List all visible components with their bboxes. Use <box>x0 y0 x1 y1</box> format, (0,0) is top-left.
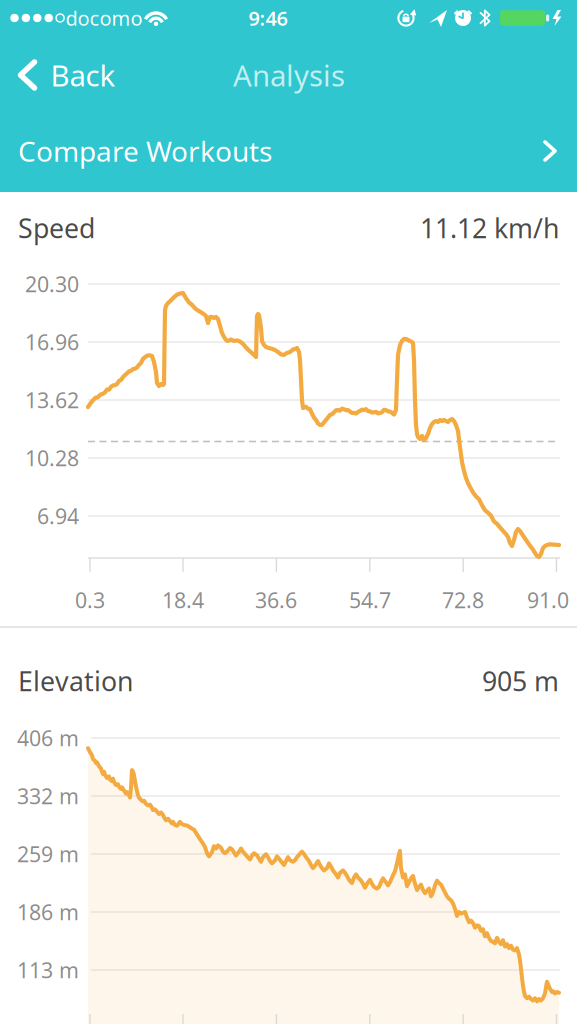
staticText: 18.4 <box>162 586 204 614</box>
staticText: 186 m <box>17 898 79 926</box>
staticText: docomo <box>65 5 142 31</box>
staticText: 11.12 km/h <box>420 210 559 246</box>
staticText: 10.28 <box>25 444 79 472</box>
staticText: Speed <box>18 210 95 246</box>
staticText: 9:46 <box>248 5 287 31</box>
staticText: 54.7 <box>349 586 391 614</box>
staticText: Compare Workouts <box>18 132 272 170</box>
button[interactable]: Back <box>16 55 115 94</box>
staticText: 20.30 <box>25 270 79 298</box>
staticText: 36.6 <box>255 586 297 614</box>
button[interactable]: Compare Workouts <box>0 111 577 191</box>
staticText: 905 m <box>482 663 559 699</box>
staticText: 13.62 <box>25 386 79 414</box>
staticText: 91.0 <box>527 586 569 614</box>
staticText: Elevation <box>18 663 133 699</box>
staticText: 259 m <box>17 840 79 868</box>
staticText: 0.3 <box>75 586 105 614</box>
staticText: Back <box>50 55 115 94</box>
staticText: 113 m <box>17 956 79 984</box>
staticText: 332 m <box>17 782 79 810</box>
staticText: 6.94 <box>37 502 79 530</box>
staticText: 72.8 <box>442 586 484 614</box>
staticText: Analysis <box>233 55 345 94</box>
staticText: 406 m <box>17 724 79 752</box>
staticText: 16.96 <box>25 328 79 356</box>
